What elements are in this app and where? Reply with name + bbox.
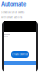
button[interactable]: Create Shortcut <box>11 51 29 58</box>
staticText: with smart actions <box>1 16 22 19</box>
staticText: Automate <box>1 1 26 8</box>
staticText: Create Shortcut <box>12 53 28 56</box>
staticText: Schedule your events <box>1 11 24 14</box>
